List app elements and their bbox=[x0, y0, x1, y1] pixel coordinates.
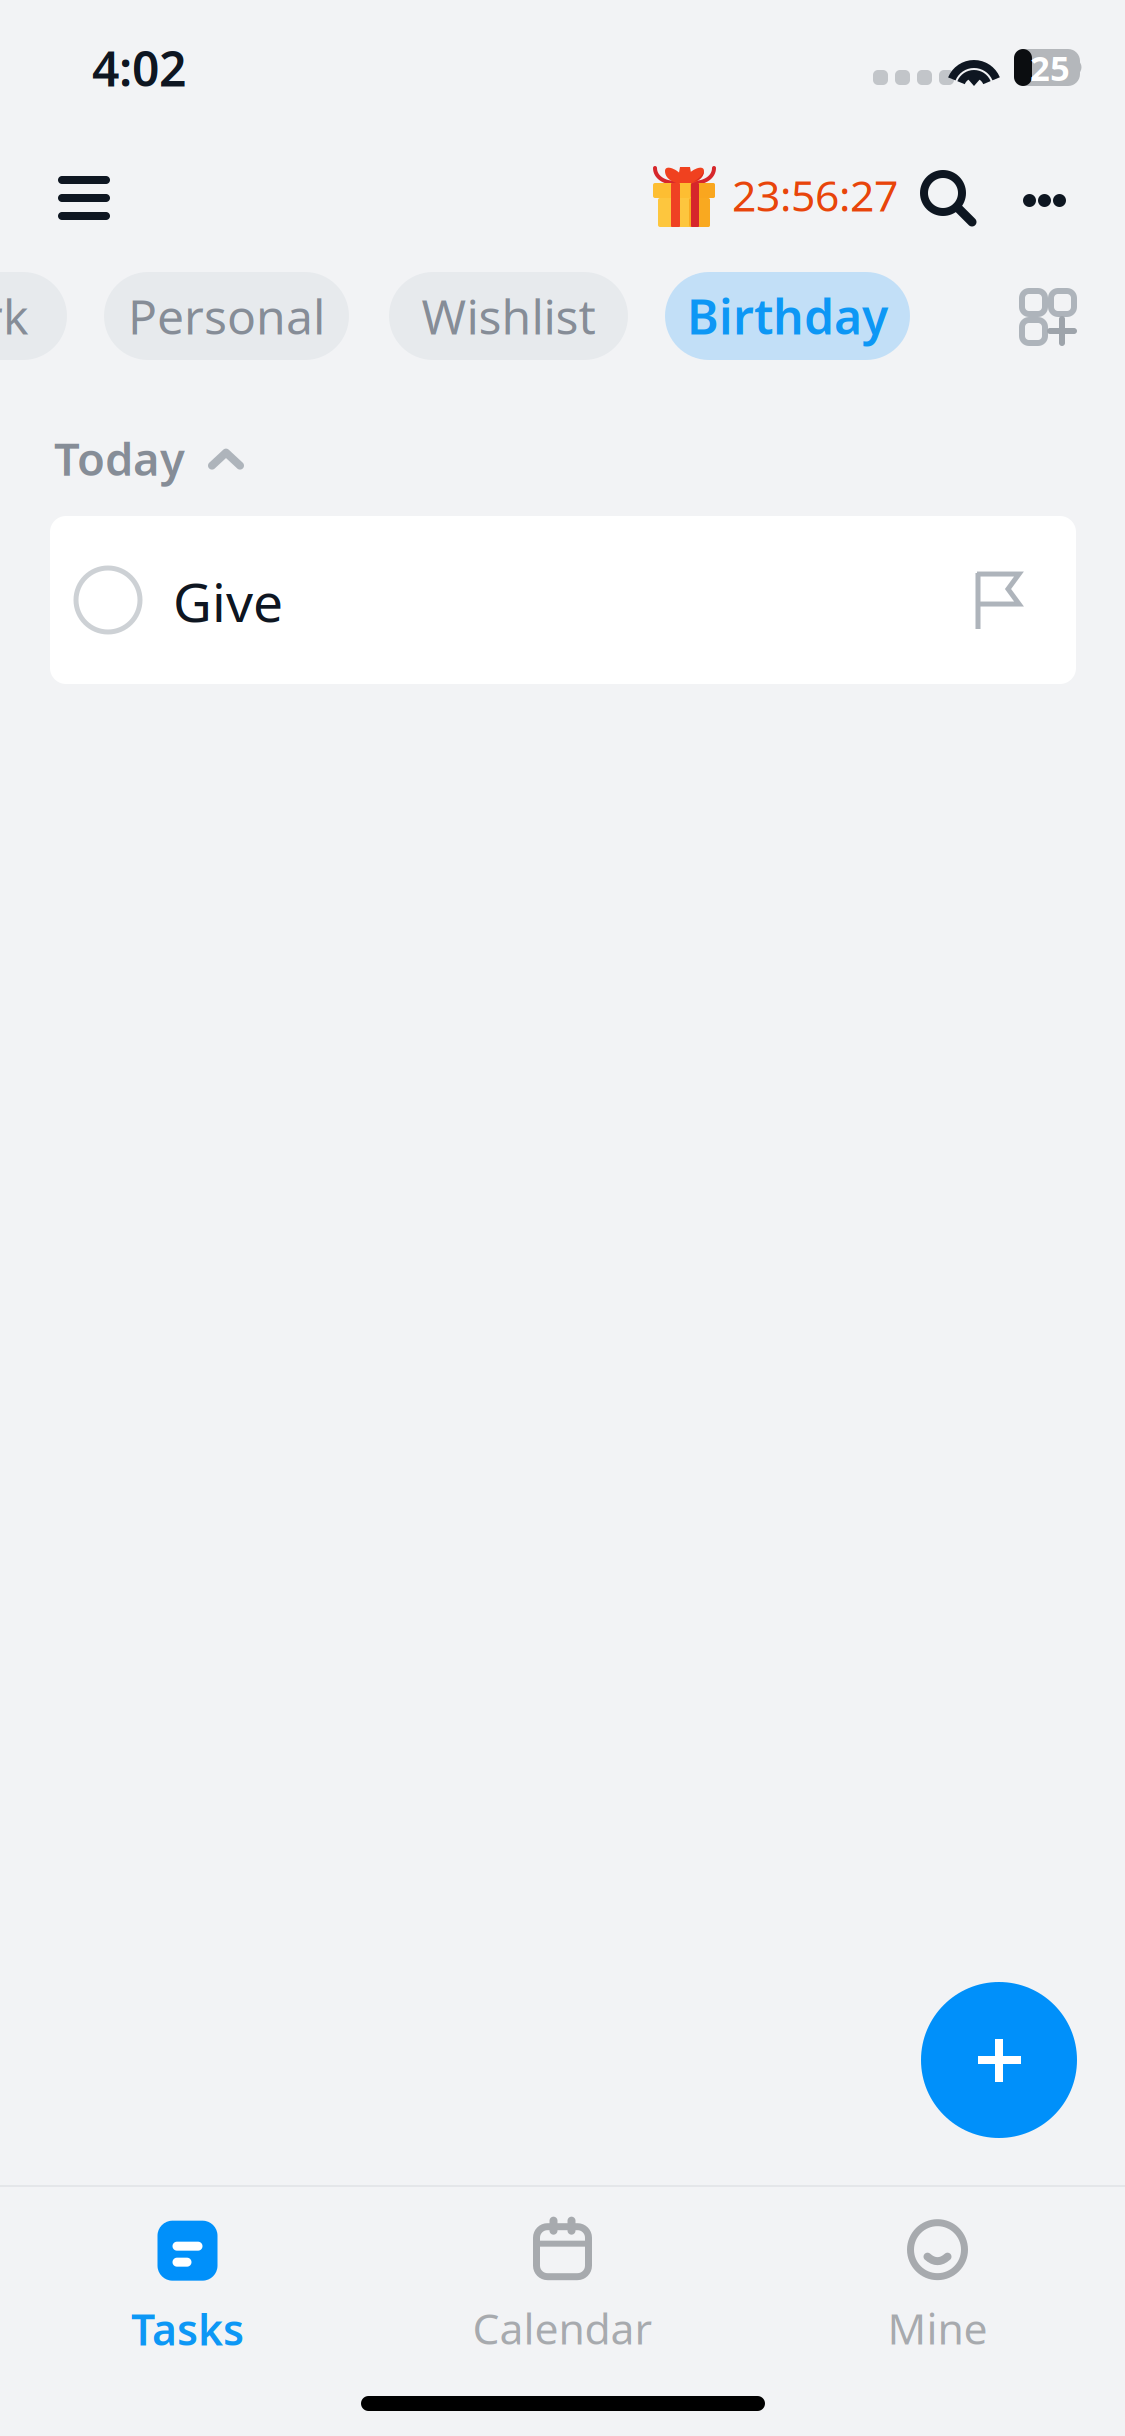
button[interactable]: More options bbox=[997, 150, 1092, 251]
staticText: Wishlist bbox=[421, 284, 595, 348]
staticText: 4:02 bbox=[92, 36, 186, 100]
button[interactable]: Birthday bbox=[665, 272, 910, 360]
button[interactable]: Mine bbox=[750, 2184, 1125, 2363]
button[interactable]: Manage lists bbox=[997, 272, 1099, 362]
button[interactable]: Menu bbox=[28, 138, 140, 254]
button[interactable]: Wishlist bbox=[389, 272, 628, 360]
button[interactable]: Calendar bbox=[375, 2183, 750, 2362]
staticText: 23:56:27 bbox=[732, 167, 898, 223]
button[interactable]: Search bbox=[898, 150, 1000, 248]
button[interactable]: Give bbox=[50, 516, 1076, 684]
staticText: Work bbox=[0, 284, 29, 348]
button[interactable]: Promotion countdown bbox=[650, 150, 898, 240]
staticText: 25 bbox=[1030, 44, 1070, 90]
staticText: Give bbox=[173, 566, 283, 637]
button[interactable]: Personal bbox=[104, 272, 349, 360]
button[interactable]: Add task bbox=[921, 1982, 1077, 2138]
staticText: Mine bbox=[887, 2300, 987, 2356]
staticText: Today bbox=[54, 428, 185, 488]
staticText: Birthday bbox=[687, 284, 888, 348]
staticText: Calendar bbox=[472, 2300, 652, 2356]
staticText: Tasks bbox=[131, 2301, 244, 2357]
staticText: Personal bbox=[128, 284, 325, 348]
button[interactable]: Collapse Today section bbox=[40, 408, 255, 508]
button[interactable]: Work bbox=[0, 272, 67, 360]
button[interactable]: Tasks bbox=[0, 2185, 375, 2364]
